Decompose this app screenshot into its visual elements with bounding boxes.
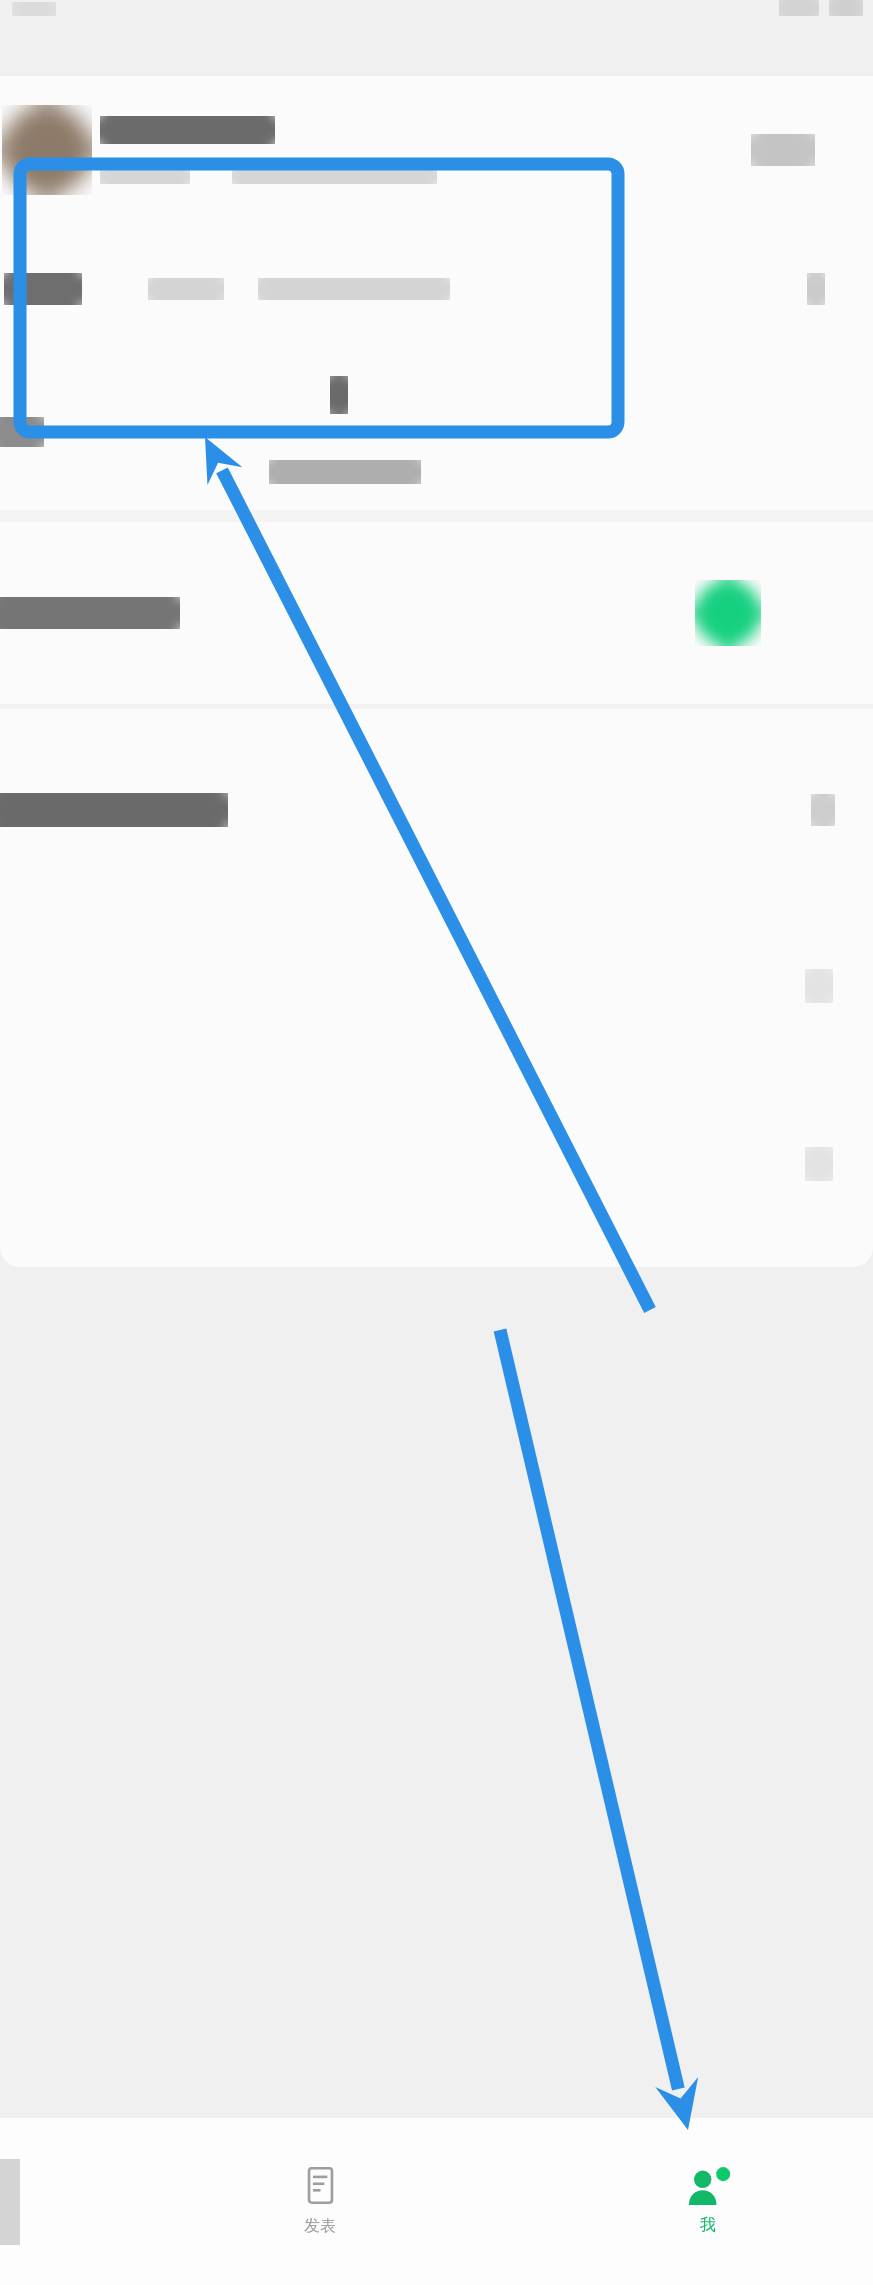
button[interactable] <box>0 911 873 1267</box>
button[interactable] <box>0 224 873 354</box>
button[interactable]: 发表 <box>223 2118 417 2285</box>
button[interactable]: Messages <box>0 2118 223 2285</box>
staticText: 我 <box>700 2215 716 2235</box>
button[interactable] <box>0 709 873 911</box>
button[interactable]: 我 <box>611 2118 805 2285</box>
button[interactable] <box>0 522 873 704</box>
button[interactable] <box>0 76 873 224</box>
button[interactable] <box>0 354 873 510</box>
staticText: 发表 <box>304 2216 336 2236</box>
